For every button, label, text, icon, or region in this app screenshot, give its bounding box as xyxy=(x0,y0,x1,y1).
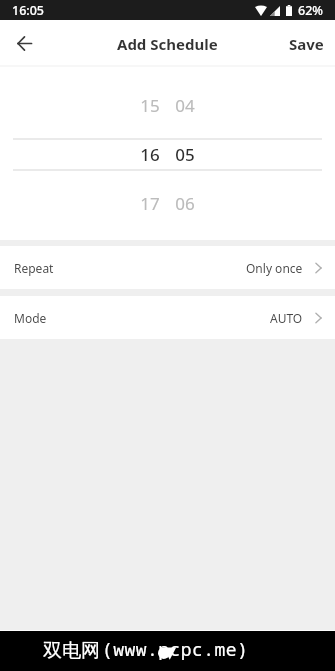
staticText: (www.pcpc.me) xyxy=(102,637,249,662)
button[interactable]: Save xyxy=(278,20,335,67)
staticText: 62% xyxy=(298,2,323,19)
button[interactable]: Back xyxy=(0,20,48,67)
staticText: Only once xyxy=(246,260,303,276)
staticText: 05 xyxy=(168,143,202,165)
staticText: 04 xyxy=(168,94,202,116)
staticText: AUTO xyxy=(270,310,303,326)
button[interactable]: 15 xyxy=(0,94,335,116)
button[interactable]: Repeat xyxy=(0,246,335,289)
button[interactable]: 16 xyxy=(0,143,335,165)
button[interactable]: 17 xyxy=(0,192,335,214)
staticText: Add Schedule xyxy=(117,34,218,54)
staticText: Mode xyxy=(14,310,47,326)
staticText: Save xyxy=(289,34,324,54)
staticText: Repeat xyxy=(14,260,54,276)
staticText: 15 xyxy=(133,94,167,116)
staticText: 06 xyxy=(168,192,202,214)
staticText: 17 xyxy=(133,192,167,214)
staticText: 16:05 xyxy=(12,2,45,19)
staticText: 双电网 xyxy=(43,639,100,663)
staticText: 16 xyxy=(133,143,167,165)
button[interactable]: Mode xyxy=(0,296,335,339)
